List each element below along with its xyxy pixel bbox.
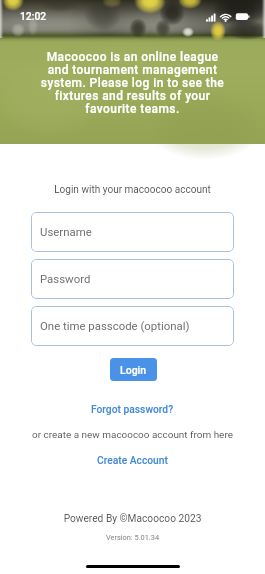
button[interactable]: Username xyxy=(31,212,234,252)
staticText: Create Account xyxy=(97,454,168,466)
staticText: Macoocoo is an online league and tournam… xyxy=(0,50,265,116)
staticText: or create a new macoocoo account from he… xyxy=(0,429,265,441)
staticText: Login xyxy=(120,364,147,376)
button[interactable]: Login xyxy=(110,358,157,381)
button[interactable]: One time passcode (optional) xyxy=(31,306,234,346)
staticText: One time passcode (optional) xyxy=(40,319,190,332)
staticText: Powered By ©Macoocoo 2023 xyxy=(0,513,265,525)
button[interactable]: Forgot password? xyxy=(0,403,265,415)
staticText: Version: 5.01.34 xyxy=(0,533,265,542)
staticText: Forgot password? xyxy=(91,403,174,415)
staticText: Password xyxy=(40,272,91,285)
staticText: Username xyxy=(40,225,92,238)
button[interactable]: Password xyxy=(31,259,234,299)
button[interactable]: Create Account xyxy=(0,454,265,466)
staticText: 12:02 xyxy=(20,10,47,22)
staticText: Login with your macoocoo account xyxy=(0,184,265,196)
